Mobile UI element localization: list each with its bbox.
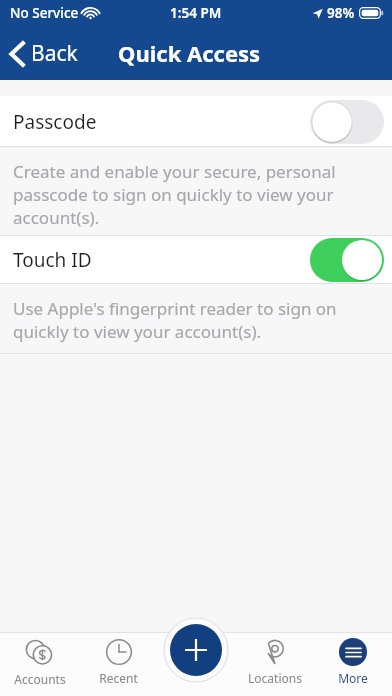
staticText: Recent xyxy=(99,670,138,686)
staticText: account(s). xyxy=(13,206,100,229)
staticText: Accounts xyxy=(14,671,66,687)
staticText: quickly to view your account(s). xyxy=(13,320,262,343)
button[interactable]: Touch ID xyxy=(0,236,392,284)
button[interactable]: Recent xyxy=(79,632,158,696)
staticText: Back xyxy=(31,39,78,68)
staticText: Create and enable your secure, personal xyxy=(13,160,336,183)
button[interactable]: Add xyxy=(170,624,222,676)
staticText: Passcode xyxy=(13,109,97,135)
staticText: Quick Access xyxy=(118,38,261,68)
staticText: Locations xyxy=(248,670,302,686)
button[interactable]: Locations xyxy=(236,632,314,696)
button[interactable]: Back xyxy=(0,33,88,74)
staticText: Touch ID xyxy=(13,247,92,273)
staticText: passcode to sign on quickly to view your xyxy=(13,183,334,206)
button[interactable]: Accounts xyxy=(0,632,79,696)
button[interactable]: Off xyxy=(310,100,384,144)
button[interactable]: Passcode xyxy=(0,96,392,147)
staticText: Use Apple's fingerprint reader to sign o… xyxy=(13,297,337,320)
staticText: More xyxy=(338,670,368,686)
button[interactable]: On xyxy=(310,238,384,282)
button[interactable]: More xyxy=(314,632,392,696)
staticText: No Service xyxy=(10,4,79,22)
staticText: 98% xyxy=(327,4,355,22)
staticText: 1:54 PM xyxy=(170,4,222,22)
